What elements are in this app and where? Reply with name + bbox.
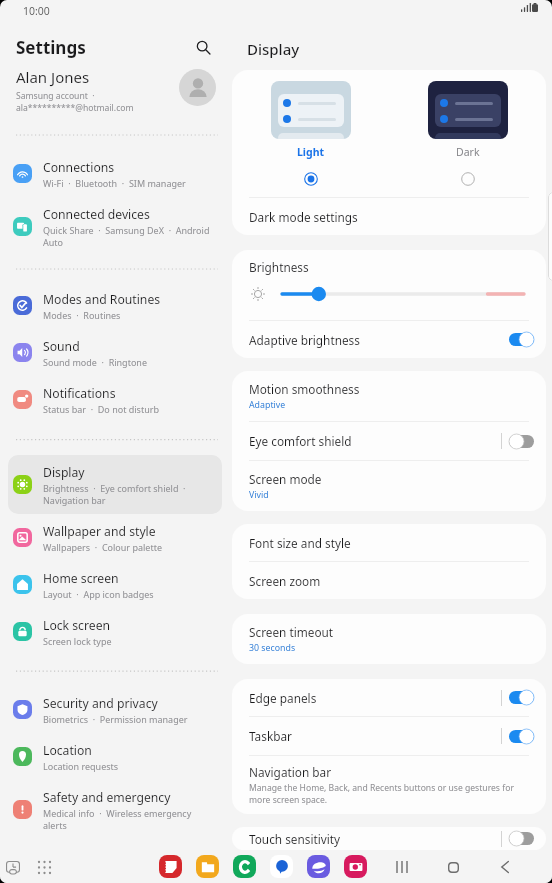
staticText: Alan Jones [16, 67, 90, 87]
staticText: Connections [43, 159, 115, 176]
button[interactable]: Light [232, 81, 389, 186]
button[interactable]: Screen timeout [232, 614, 546, 664]
staticText: Screen zoom [249, 573, 321, 589]
staticText: Home screen [43, 570, 119, 587]
button[interactable]: Phone [233, 855, 256, 878]
button[interactable]: Toggle off [509, 434, 534, 449]
button[interactable]: Navigation bar [232, 756, 546, 814]
button[interactable]: Location [8, 733, 222, 780]
staticText: Status bar · Do not disturb [43, 403, 159, 415]
staticText: Eye comfort shield [249, 433, 501, 449]
button[interactable]: Brightness [232, 250, 546, 320]
staticText: 10:00 [23, 4, 50, 18]
button[interactable]: Toggle off [509, 831, 534, 846]
staticText: Samsung account · [16, 90, 95, 102]
button[interactable]: Edge panels [232, 679, 546, 716]
staticText: Taskbar [249, 728, 501, 744]
staticText: Display [247, 39, 300, 59]
button[interactable]: Messages [270, 855, 293, 878]
staticText: Brightness [249, 259, 309, 275]
staticText: 30 seconds [249, 642, 296, 654]
staticText: Biometrics · Permission manager [43, 713, 188, 725]
staticText: Dark [456, 145, 480, 159]
button[interactable]: Home [437, 851, 469, 883]
staticText: ala**********@hotmail.com [16, 102, 134, 114]
button[interactable]: Internet [307, 855, 330, 878]
staticText: Adaptive brightness [249, 332, 509, 348]
staticText: Display [43, 464, 85, 481]
button[interactable]: Taskbar [0, 854, 26, 880]
button[interactable]: Security and privacy [8, 686, 222, 733]
staticText: Wallpaper and style [43, 523, 156, 540]
button[interactable]: Alan Jones [0, 67, 230, 120]
button[interactable]: Lock screen [8, 608, 222, 655]
button[interactable]: Motion smoothness [232, 371, 546, 421]
staticText: Manage the Home, Back, and Recents butto… [249, 782, 514, 806]
button[interactable]: Safety and emergency [8, 780, 222, 839]
staticText: Location requests [43, 760, 119, 772]
button[interactable]: Screen zoom [232, 562, 546, 599]
staticText: Motion smoothness [249, 381, 360, 397]
button[interactable]: Connected devices [8, 197, 222, 256]
staticText: Location [43, 742, 92, 759]
staticText: Settings [16, 36, 86, 59]
button[interactable]: Notifications [8, 376, 222, 423]
button[interactable]: Screen mode [232, 461, 546, 511]
staticText: Navigation bar [249, 764, 332, 780]
button[interactable]: All apps [31, 854, 57, 880]
staticText: Touch sensitivity [249, 831, 501, 847]
button[interactable]: Home screen [8, 561, 222, 608]
staticText: Wallpapers · Colour palette [43, 541, 162, 553]
button[interactable]: Modes and Routines [8, 282, 222, 329]
staticText: Dark mode settings [249, 209, 358, 225]
staticText: Brightness · Eye comfort shield · Naviga… [43, 482, 186, 506]
button[interactable]: Dark [389, 81, 546, 186]
staticText: Font size and style [249, 535, 351, 551]
staticText: Adaptive [249, 399, 286, 411]
staticText: Security and privacy [43, 695, 158, 712]
button[interactable]: Search [190, 34, 216, 60]
button[interactable]: Connections [8, 150, 222, 197]
button[interactable]: Edge panel handle [548, 192, 552, 281]
staticText: Medical info · Wireless emergency alerts [43, 807, 192, 831]
button[interactable]: Touch sensitivity [232, 827, 546, 850]
button[interactable]: Font size and style [232, 524, 546, 561]
staticText: Light [297, 145, 325, 159]
button[interactable]: Display [8, 455, 222, 514]
button[interactable]: Instagram [344, 855, 367, 878]
staticText: Modes · Routines [43, 309, 121, 321]
staticText: Vivid [249, 489, 269, 501]
button[interactable]: Sound [8, 329, 222, 376]
staticText: Sound [43, 338, 80, 355]
staticText: Modes and Routines [43, 291, 161, 308]
button[interactable]: Recents [385, 851, 417, 883]
staticText: Notifications [43, 385, 116, 402]
staticText: Quick Share · Samsung DeX · Android Auto [43, 224, 210, 248]
staticText: Edge panels [249, 690, 501, 706]
button[interactable]: Toggle on [509, 332, 534, 347]
button[interactable]: Dark mode settings [232, 198, 546, 235]
staticText: Lock screen [43, 617, 111, 634]
button[interactable]: Adaptive brightness [232, 321, 546, 358]
staticText: Layout · App icon badges [43, 588, 154, 600]
button[interactable]: Back [489, 851, 521, 883]
button[interactable]: Samsung Notes [159, 855, 182, 878]
staticText: Screen mode [249, 471, 322, 487]
staticText: Safety and emergency [43, 789, 171, 806]
staticText: Connected devices [43, 206, 150, 223]
button[interactable]: Taskbar [232, 717, 546, 755]
button[interactable]: Toggle on [509, 690, 534, 705]
button[interactable]: My Files [196, 855, 219, 878]
staticText: Sound mode · Ringtone [43, 356, 147, 368]
button[interactable]: Toggle on [509, 729, 534, 744]
button[interactable]: Eye comfort shield [232, 422, 546, 460]
staticText: Screen lock type [43, 635, 112, 647]
staticText: Wi-Fi · Bluetooth · SIM manager [43, 177, 186, 189]
staticText: Screen timeout [249, 624, 334, 640]
button[interactable]: Wallpaper and style [8, 514, 222, 561]
